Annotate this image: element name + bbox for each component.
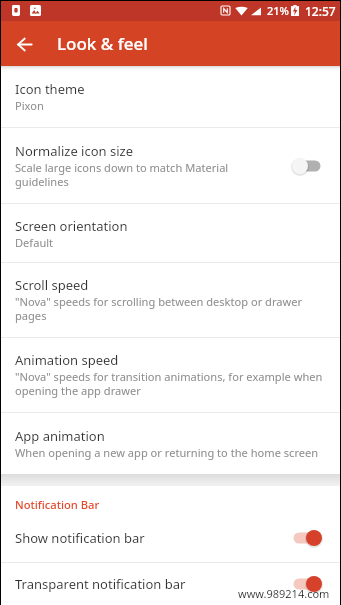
button[interactable]: Screen orientation bbox=[0, 204, 341, 262]
button[interactable]: Transparent notification bar bbox=[0, 563, 341, 605]
button[interactable]: Icon theme bbox=[0, 66, 341, 127]
staticText: 12:57 bbox=[305, 3, 336, 19]
staticText: "Nova" speeds for transition animations,… bbox=[15, 369, 327, 399]
button[interactable]: Scroll speed bbox=[0, 263, 341, 337]
button[interactable]: Normalize icon size bbox=[0, 128, 341, 203]
button[interactable]: App animation bbox=[0, 413, 341, 474]
staticText: Pixon bbox=[15, 98, 44, 113]
staticText: Notification Bar bbox=[15, 497, 100, 512]
staticText: Look & feel bbox=[57, 32, 148, 55]
staticText: Animation speed bbox=[15, 351, 119, 369]
staticText: www.989214.com bbox=[238, 586, 330, 601]
staticText: Icon theme bbox=[15, 80, 85, 98]
staticText: Transparent notification bar bbox=[15, 575, 186, 593]
button[interactable]: Switch off bbox=[287, 153, 327, 179]
staticText: Normalize icon size bbox=[15, 142, 133, 160]
button[interactable]: Animation speed bbox=[0, 338, 341, 412]
staticText: Scale large icons down to match Material… bbox=[15, 160, 277, 190]
button[interactable]: Back bbox=[8, 28, 40, 60]
staticText: Screen orientation bbox=[15, 217, 128, 235]
staticText: 21% bbox=[267, 3, 289, 18]
button[interactable]: Switch on bbox=[287, 525, 327, 551]
staticText: When opening a new app or returning to t… bbox=[15, 445, 319, 460]
button[interactable]: Show notification bar bbox=[0, 513, 341, 562]
staticText: Default bbox=[15, 235, 54, 250]
staticText: Scroll speed bbox=[15, 276, 89, 294]
staticText: "Nova" speeds for scrolling between desk… bbox=[15, 294, 327, 324]
button[interactable]: Switch on bbox=[287, 571, 327, 597]
staticText: App animation bbox=[15, 427, 105, 445]
staticText: Show notification bar bbox=[15, 529, 145, 547]
